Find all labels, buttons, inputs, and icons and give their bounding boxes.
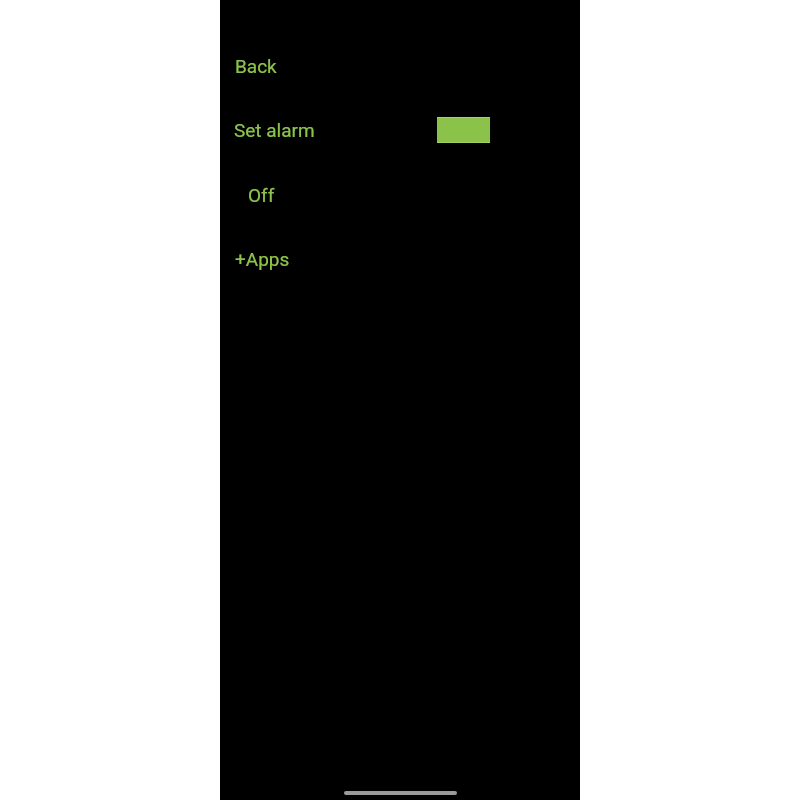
button[interactable]: Set alarm	[220, 98, 580, 163]
button[interactable]: Back	[220, 34, 580, 99]
staticText: Set alarm	[234, 119, 315, 141]
button[interactable]: Off	[220, 163, 580, 228]
button[interactable]: Alarm enabled	[437, 117, 490, 143]
staticText: Off	[248, 184, 275, 206]
staticText: +Apps	[235, 248, 290, 270]
staticText: Back	[235, 55, 277, 77]
button[interactable]: +Apps	[220, 227, 580, 292]
